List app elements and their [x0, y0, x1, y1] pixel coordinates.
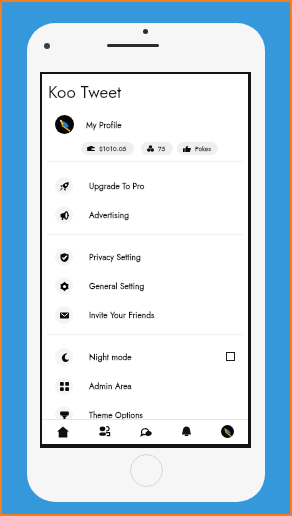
button[interactable]: Invite Your Friends	[42, 300, 248, 329]
button[interactable]: Admin Area	[42, 371, 248, 400]
staticText: Invite Your Friends	[89, 309, 155, 321]
button[interactable]: My Profile	[42, 115, 248, 155]
staticText: Upgrade To Pro	[89, 180, 145, 192]
button[interactable]: $1010.05	[81, 142, 134, 155]
staticText: Advertising	[89, 209, 130, 221]
staticText: Night mode	[89, 351, 132, 363]
button[interactable]: Upgrade To Pro	[42, 171, 248, 200]
staticText: 75	[158, 144, 166, 154]
button[interactable]: 75	[141, 142, 173, 155]
button[interactable]: Theme Options	[42, 400, 248, 429]
staticText: Admin Area	[89, 380, 132, 392]
button[interactable]: Notifications	[166, 420, 207, 443]
button[interactable]: Profile	[207, 420, 248, 443]
staticText: Theme Options	[89, 409, 143, 421]
staticText: Koo Tweet	[48, 80, 122, 105]
staticText: My Profile	[86, 119, 122, 131]
button[interactable]: Friends	[84, 420, 125, 443]
button[interactable]: General Setting	[42, 271, 248, 300]
button[interactable]: Advertising	[42, 200, 248, 229]
button[interactable]: Chat	[125, 420, 166, 443]
button[interactable]: Koo Tweet	[42, 74, 248, 111]
button[interactable]: Privacy Setting	[42, 242, 248, 271]
staticText: Privacy Setting	[89, 251, 141, 263]
button[interactable]: Home	[42, 420, 84, 443]
staticText: Pokes	[195, 144, 211, 154]
staticText: General Setting	[89, 280, 145, 292]
staticText: $1010.05	[99, 144, 127, 154]
button[interactable]: Pokes	[177, 142, 218, 155]
button[interactable]: Night mode	[42, 342, 248, 371]
